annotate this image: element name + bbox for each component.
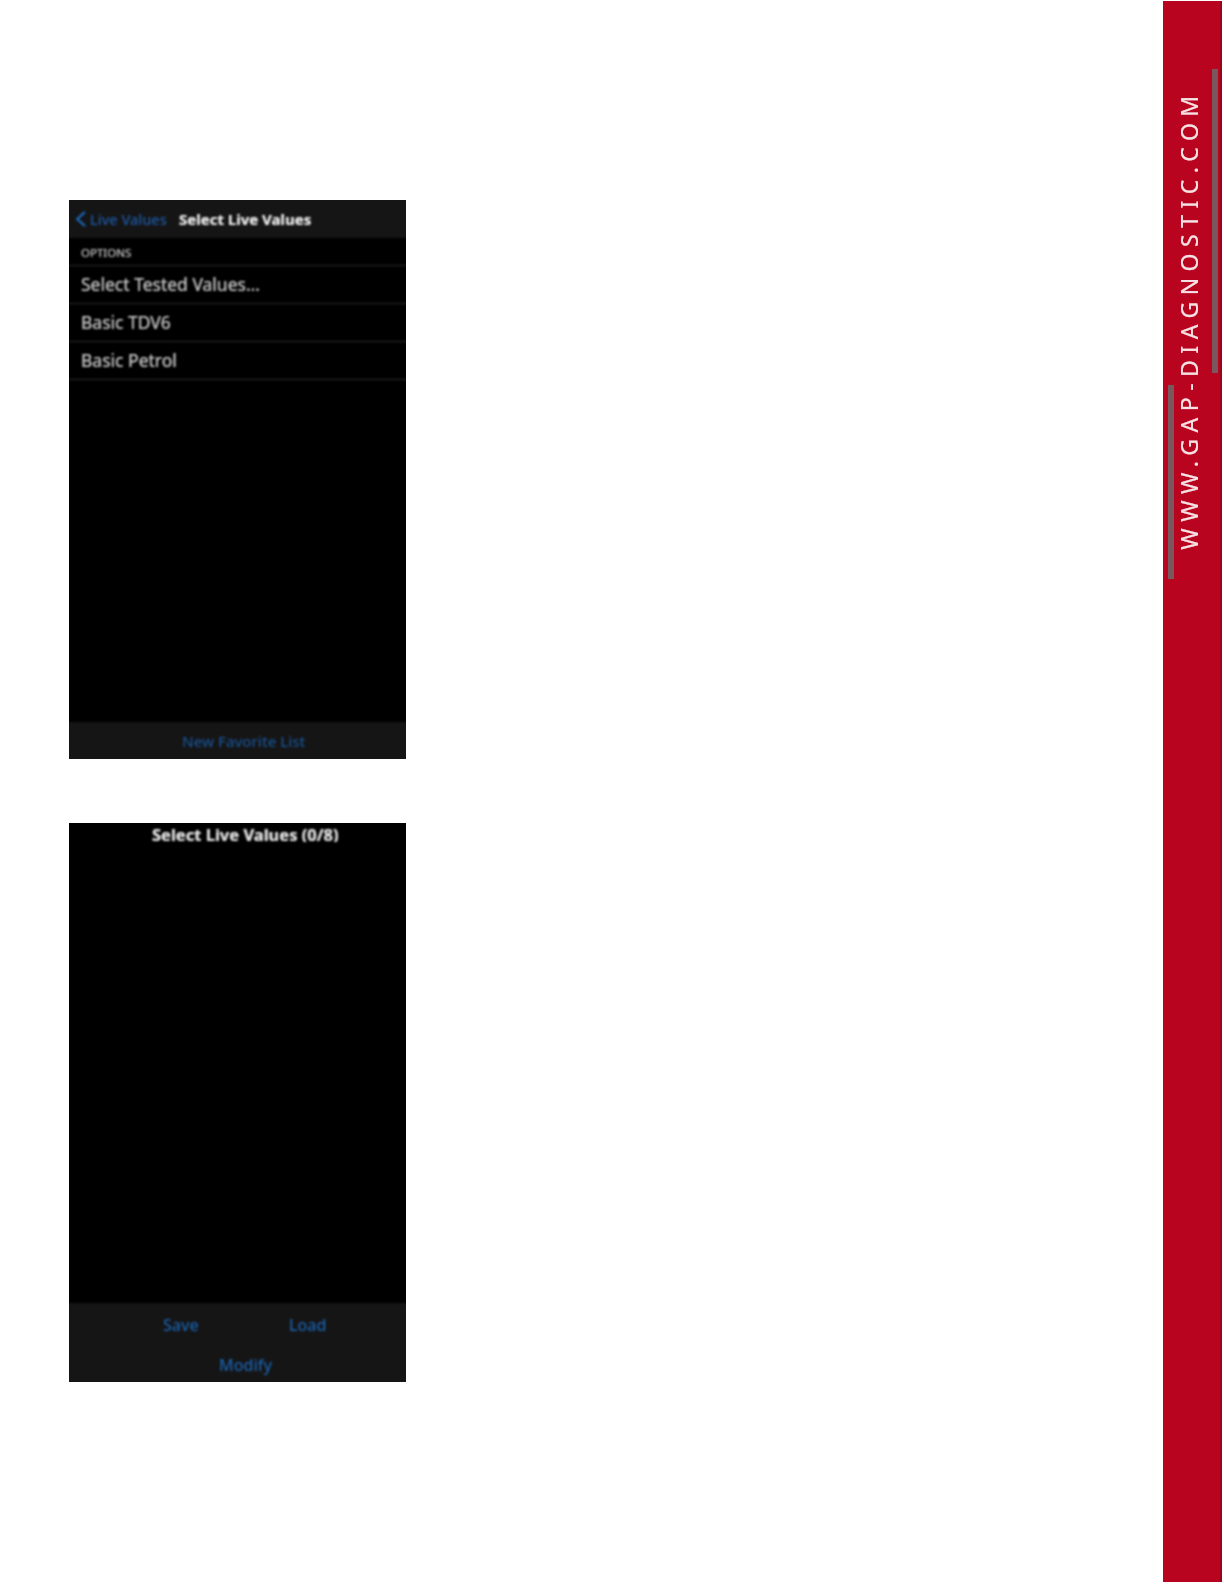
staticText: WWW.GAP-DIAGNOSTIC.COM <box>1173 89 1204 550</box>
other: Back <box>76 211 85 227</box>
button[interactable]: New Favorite List <box>69 722 406 759</box>
button[interactable]: Save <box>151 1303 211 1347</box>
staticText: Modify <box>219 1354 272 1376</box>
staticText: Basic TDV6 <box>81 310 171 334</box>
button[interactable]: Select Tested Values… <box>69 266 406 303</box>
staticText: OPTIONS <box>81 245 132 261</box>
staticText: Load <box>289 1314 327 1336</box>
staticText: Select Live Values <box>179 209 312 229</box>
button[interactable]: Back <box>76 200 167 238</box>
staticText: Save <box>163 1314 199 1336</box>
button[interactable]: Basic TDV6 <box>69 304 406 341</box>
button[interactable]: Modify <box>210 1347 280 1382</box>
staticText: Select Live Values (0/8) <box>152 823 339 842</box>
staticText: Select Tested Values… <box>81 272 260 296</box>
staticText: Live Values <box>90 209 167 229</box>
button[interactable]: Basic Petrol <box>69 342 406 379</box>
button[interactable]: Load <box>278 1303 338 1347</box>
staticText: Basic Petrol <box>81 348 177 372</box>
staticText: New Favorite List <box>182 731 306 751</box>
